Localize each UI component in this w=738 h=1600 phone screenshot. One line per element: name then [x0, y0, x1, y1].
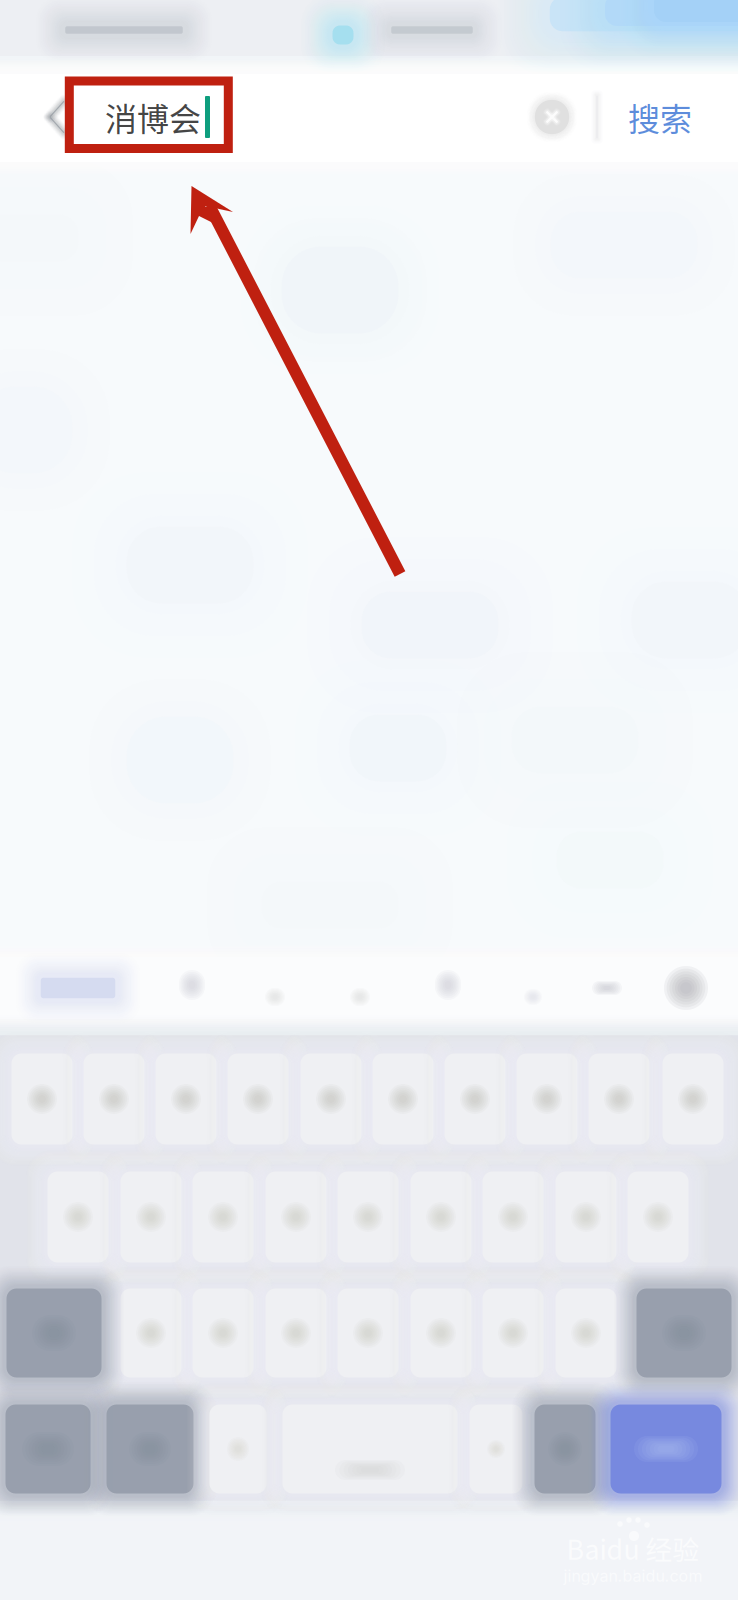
button[interactable]: Backspace — [512, 1382, 618, 1516]
button[interactable]: Key — [605, 1149, 711, 1285]
button[interactable]: Key — [388, 1266, 494, 1400]
button[interactable]: Key — [460, 1149, 566, 1285]
button[interactable]: Clear text — [510, 75, 594, 159]
button[interactable]: Comma — [187, 1382, 289, 1516]
staticText: 消博会 — [105, 94, 201, 140]
staticText: 搜索 — [628, 94, 692, 140]
button[interactable]: Key — [460, 1266, 566, 1400]
button[interactable]: Key — [566, 1031, 672, 1167]
button[interactable]: Key — [98, 1266, 204, 1400]
button[interactable]: Key — [170, 1149, 276, 1285]
button[interactable]: Key — [278, 1031, 384, 1167]
button[interactable]: Key — [494, 1031, 600, 1167]
button[interactable]: Key — [61, 1031, 167, 1167]
button[interactable]: Key — [98, 1149, 204, 1285]
button[interactable]: Search — [588, 1382, 738, 1516]
button[interactable]: Period — [447, 1382, 545, 1516]
button[interactable]: Key — [243, 1266, 349, 1400]
button[interactable]: Key — [0, 1031, 95, 1167]
button[interactable]: Key — [205, 1031, 311, 1167]
button[interactable]: Key — [315, 1266, 421, 1400]
button[interactable]: Emoji — [84, 1382, 216, 1516]
button[interactable]: 消博会 — [105, 77, 405, 157]
button[interactable]: Symbols — [0, 1382, 113, 1516]
button[interactable]: Space — [260, 1382, 480, 1516]
button[interactable]: Shift — [0, 1266, 124, 1400]
button[interactable]: Key — [315, 1149, 421, 1285]
button[interactable]: Key — [243, 1149, 349, 1285]
button[interactable]: Back — [21, 77, 79, 157]
button[interactable]: Key — [133, 1031, 239, 1167]
button[interactable]: Key — [350, 1031, 456, 1167]
button[interactable]: Key — [422, 1031, 528, 1167]
button[interactable]: 搜索 — [600, 75, 720, 159]
button[interactable]: Key — [533, 1266, 639, 1400]
button[interactable]: Key — [533, 1149, 639, 1285]
button[interactable]: Key — [25, 1149, 131, 1285]
button[interactable]: Key — [640, 1031, 738, 1167]
button[interactable]: Key — [388, 1149, 494, 1285]
button[interactable]: Key — [170, 1266, 276, 1400]
button[interactable]: Delete — [614, 1266, 738, 1400]
